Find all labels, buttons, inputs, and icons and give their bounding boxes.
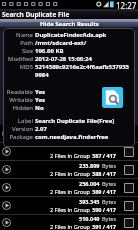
staticText: com.needjava.finderfree bbox=[35, 133, 109, 141]
staticText: Bytes bbox=[102, 198, 117, 205]
staticText: Bytes bbox=[102, 162, 117, 169]
staticText: 2 Files in Group bbox=[50, 206, 90, 213]
other: Expand group bbox=[2, 147, 11, 156]
button[interactable]: Expand group bbox=[0, 179, 138, 196]
staticText: 2012-07-28 15:06:24 bbox=[35, 55, 92, 63]
staticText: 9984 bbox=[35, 71, 49, 79]
staticText: Search Duplicate File bbox=[2, 10, 70, 19]
staticText: Bytes bbox=[102, 215, 117, 222]
staticText: 510.049 bbox=[79, 215, 100, 222]
staticText: 2 Files in Group bbox=[50, 223, 90, 230]
staticText: 12:27 bbox=[116, 0, 137, 9]
staticText: Modified bbox=[8, 55, 33, 63]
staticText: Yes bbox=[35, 88, 46, 96]
staticText: Version bbox=[11, 125, 33, 133]
staticText: 390 / 417 bbox=[92, 206, 117, 213]
staticText: 2 Files in Group bbox=[50, 170, 90, 177]
button[interactable]: Expand group bbox=[0, 215, 138, 230]
staticText: 391 / 417 bbox=[92, 223, 117, 230]
staticText: 2.07 bbox=[35, 125, 47, 133]
staticText: 2 Files in Group bbox=[50, 188, 90, 195]
staticText: 235.899 bbox=[79, 162, 100, 169]
button[interactable]: Expand group bbox=[0, 161, 138, 178]
button[interactable]: Expand group bbox=[0, 125, 138, 142]
staticText: DuplicateFinderAds.apk bbox=[35, 31, 107, 39]
staticText: 256.004 bbox=[79, 180, 100, 187]
other: Expand group bbox=[2, 129, 11, 138]
staticText: No bbox=[35, 104, 44, 112]
staticText: 386 / 417 bbox=[92, 134, 117, 141]
staticText: Search Duplicate File(Free) bbox=[35, 117, 115, 125]
staticText: 393.345 bbox=[79, 198, 100, 205]
staticText: Label bbox=[17, 117, 33, 125]
staticText: Yes bbox=[35, 96, 46, 104]
staticText: Bytes bbox=[102, 180, 117, 187]
other: Expand group bbox=[2, 165, 11, 174]
staticText: /mnt/sdcard-ext/ bbox=[35, 39, 87, 47]
other: Expand group bbox=[2, 201, 11, 210]
staticText: Writable bbox=[9, 96, 33, 104]
staticText: 196.60 KB bbox=[35, 47, 64, 55]
staticText: 2 Files in Group bbox=[50, 134, 90, 141]
button[interactable]: Expand group bbox=[0, 197, 138, 214]
staticText: 5214589c9216e2c4f6aafb537955 bbox=[35, 63, 130, 71]
staticText: Readable bbox=[6, 88, 33, 96]
staticText: Size bbox=[21, 47, 33, 55]
button[interactable]: Expand group bbox=[0, 143, 138, 160]
button[interactable]: Hide Search Results bbox=[0, 19, 138, 27]
staticText: 388 / 417 bbox=[92, 170, 117, 177]
staticText: Hidden bbox=[12, 104, 33, 112]
staticText: MD5 bbox=[19, 63, 33, 71]
staticText: Package bbox=[9, 133, 33, 141]
staticText: Path bbox=[20, 39, 33, 47]
staticText: 387 / 417 bbox=[92, 152, 117, 159]
other: Expand group bbox=[2, 183, 11, 192]
staticText: 389 / 417 bbox=[92, 188, 117, 195]
staticText: Name bbox=[16, 31, 33, 39]
staticText: Hide Search Results bbox=[40, 20, 99, 28]
other: Expand group bbox=[2, 218, 11, 227]
staticText: 2 Files in Group bbox=[50, 152, 90, 159]
